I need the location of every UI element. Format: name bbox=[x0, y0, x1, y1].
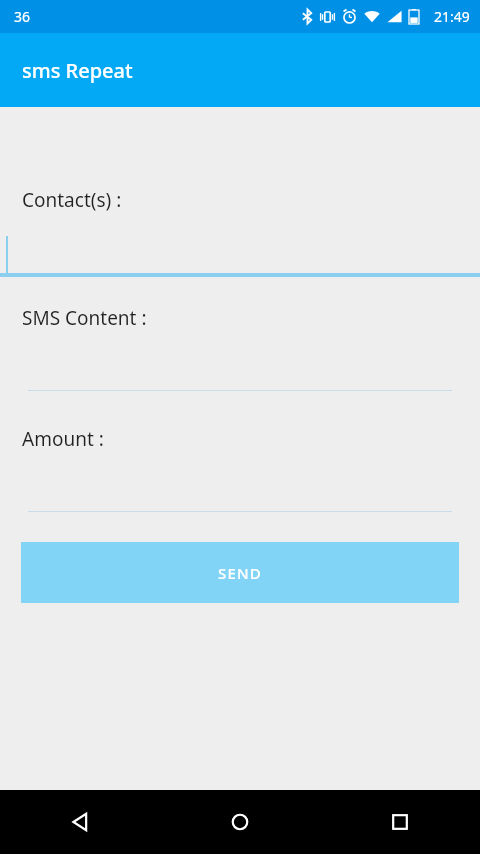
staticText: Amount : bbox=[22, 426, 104, 452]
button[interactable] bbox=[0, 235, 480, 277]
button[interactable]: Back bbox=[0, 790, 160, 854]
button[interactable] bbox=[0, 492, 480, 512]
button[interactable]: SEND bbox=[21, 542, 459, 603]
staticText: SEND bbox=[218, 563, 263, 583]
staticText: 21:49 bbox=[434, 7, 470, 26]
staticText: sms Repeat bbox=[22, 57, 133, 84]
button[interactable] bbox=[0, 371, 480, 391]
staticText: Contact(s) : bbox=[22, 187, 122, 213]
button[interactable]: Home bbox=[160, 790, 320, 854]
staticText: 36 bbox=[14, 7, 31, 26]
button[interactable]: Recent apps bbox=[320, 790, 480, 854]
staticText: SMS Content : bbox=[22, 305, 147, 331]
